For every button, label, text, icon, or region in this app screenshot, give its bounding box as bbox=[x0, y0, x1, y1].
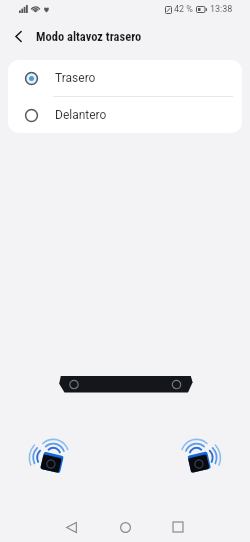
staticText: Modo altavoz trasero bbox=[36, 29, 142, 44]
staticText: 42 % bbox=[174, 4, 193, 15]
button[interactable]: Back bbox=[51, 508, 91, 542]
button[interactable]: Delantero bbox=[8, 97, 242, 133]
button[interactable]: Home bbox=[105, 508, 145, 542]
button[interactable]: Trasero bbox=[8, 60, 242, 96]
button[interactable]: Navigate up bbox=[0, 18, 36, 54]
staticText: Delantero bbox=[55, 108, 107, 122]
staticText: 13:38 bbox=[210, 4, 233, 15]
button[interactable]: Recent apps bbox=[158, 508, 198, 542]
staticText: Trasero bbox=[55, 71, 96, 85]
